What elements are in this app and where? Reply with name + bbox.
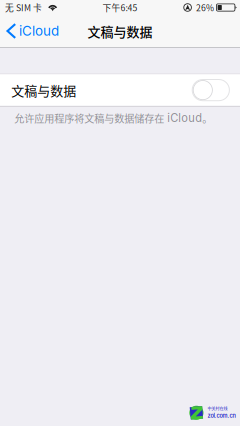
staticText: 中关村在线 xyxy=(207,406,227,412)
staticText: 26% xyxy=(196,1,214,14)
button[interactable]: iCloud xyxy=(0,15,67,47)
button[interactable]: 文稿与数据 xyxy=(0,74,240,106)
staticText: 下午6:45 xyxy=(102,1,137,14)
staticText: 无 SIM 卡 xyxy=(5,1,42,14)
staticText: 允许应用程序将文稿与数据储存在 iCloud。 xyxy=(14,111,212,125)
staticText: zol.com.cn xyxy=(207,412,235,419)
staticText: 文稿与数据 xyxy=(11,81,76,99)
staticText: iCloud xyxy=(19,23,59,39)
staticText: 文稿与数据 xyxy=(87,22,152,40)
